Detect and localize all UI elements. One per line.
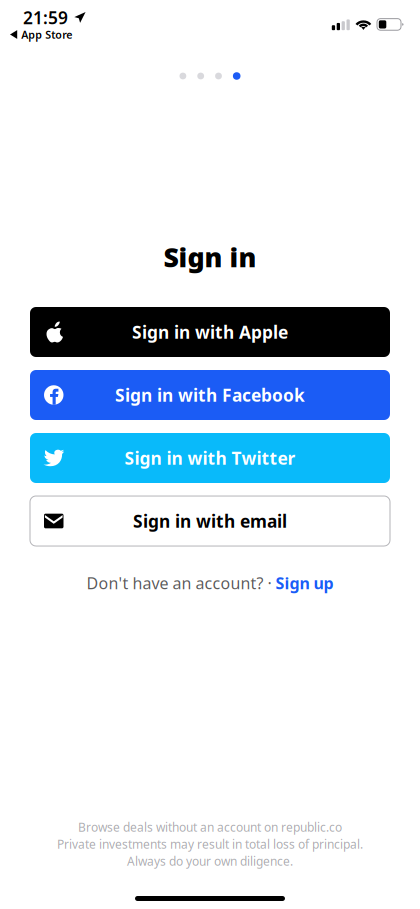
staticText: Sign in with Facebook <box>115 383 305 406</box>
staticText: Always do your own diligence. <box>127 853 293 869</box>
staticText: Sign up <box>275 572 333 594</box>
staticText: 21:59 <box>23 6 68 29</box>
staticText: Sign in with Twitter <box>124 446 295 469</box>
staticText: Browse deals without an account on repub… <box>78 819 342 835</box>
staticText: Private investments may result in total … <box>57 836 363 852</box>
staticText: App Store <box>21 27 72 42</box>
staticText: Sign in <box>163 239 256 275</box>
staticText: Sign in with Apple <box>132 320 288 343</box>
button[interactable]: Sign in with Apple <box>30 307 390 357</box>
staticText: Don't have an account? · <box>86 572 271 594</box>
staticText: Sign in with email <box>133 509 287 532</box>
button[interactable]: Sign in with Facebook <box>30 370 390 420</box>
button[interactable]: Sign in with email <box>30 496 390 546</box>
button[interactable]: Sign in with Twitter <box>30 433 390 483</box>
button[interactable]: App Store <box>0 24 78 44</box>
button[interactable]: Sign up <box>275 572 333 594</box>
